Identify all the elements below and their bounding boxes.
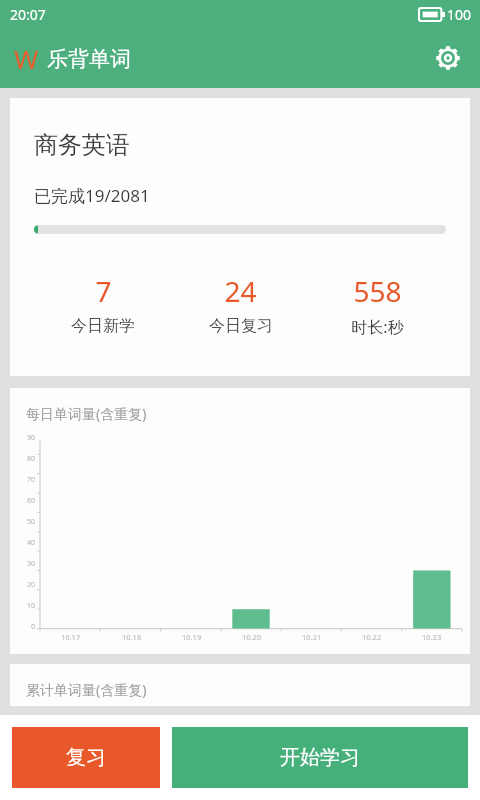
staticText: 今日复习: [209, 316, 273, 336]
staticText: 10.23: [422, 632, 442, 642]
staticText: 24: [224, 272, 257, 310]
staticText: 80: [27, 454, 36, 464]
staticText: 7: [95, 272, 112, 310]
staticText: 30: [27, 559, 36, 569]
button[interactable]: 开始学习: [172, 727, 468, 788]
staticText: 每日单词量(含重复): [26, 404, 147, 423]
staticText: 20:07: [10, 5, 46, 24]
staticText: 20: [27, 580, 36, 590]
button[interactable]: 7: [34, 272, 172, 336]
staticText: 10.18: [122, 632, 142, 642]
staticText: 10.17: [61, 632, 81, 642]
staticText: 已完成19/2081: [34, 184, 150, 207]
staticText: 时长:秒: [351, 316, 404, 338]
staticText: 10: [27, 601, 36, 611]
staticText: 100: [447, 5, 472, 24]
button[interactable]: 558: [309, 272, 446, 338]
staticText: 0: [31, 622, 36, 632]
staticText: 复习: [66, 745, 106, 770]
staticText: 10.21: [302, 632, 322, 642]
button[interactable]: 复习: [12, 727, 160, 788]
staticText: 60: [27, 496, 36, 506]
staticText: 10.22: [362, 632, 382, 642]
staticText: 70: [27, 475, 36, 485]
staticText: 558: [353, 272, 402, 310]
staticText: 90: [27, 433, 36, 443]
staticText: 50: [27, 517, 36, 527]
staticText: 10.20: [242, 632, 262, 642]
staticText: 开始学习: [280, 745, 360, 770]
staticText: 累计单词量(含重复): [26, 680, 147, 699]
staticText: 商务英语: [34, 130, 130, 160]
button[interactable]: 商务英语: [10, 98, 470, 376]
staticText: 今日新学: [71, 316, 135, 336]
staticText: W: [14, 41, 39, 76]
staticText: 40: [27, 538, 36, 548]
button[interactable]: 24: [172, 272, 309, 336]
staticText: 乐背单词: [47, 46, 131, 72]
button[interactable]: Settings: [430, 40, 466, 76]
staticText: 10.19: [182, 632, 202, 642]
